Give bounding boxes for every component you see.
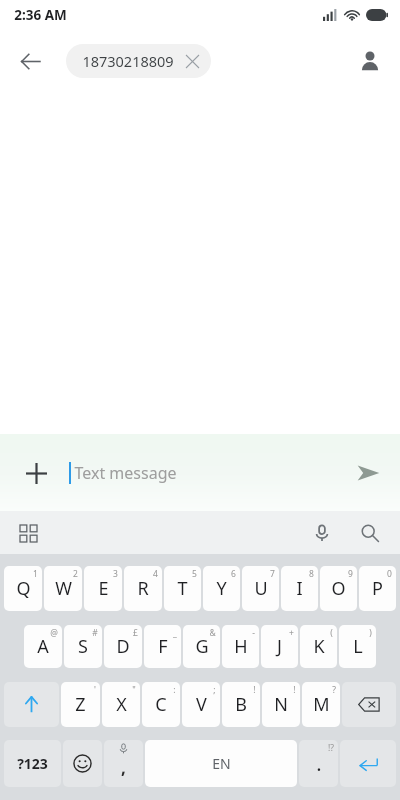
staticText: ! xyxy=(293,684,296,696)
staticText: I xyxy=(296,576,303,601)
staticText: V xyxy=(196,692,207,717)
button[interactable]: ?123 xyxy=(4,740,61,787)
staticText: X xyxy=(116,692,127,717)
button[interactable]: A xyxy=(24,625,62,668)
button[interactable]: Search xyxy=(350,513,390,553)
button[interactable]: R xyxy=(124,566,162,611)
button[interactable]: Apps xyxy=(8,513,48,553)
staticText: K xyxy=(313,634,325,659)
staticText: EN xyxy=(212,754,231,773)
staticText: 6 xyxy=(231,568,236,580)
button[interactable]: N xyxy=(262,682,300,727)
button[interactable]: I xyxy=(281,566,318,611)
staticText: O xyxy=(331,576,346,601)
staticText: !? xyxy=(328,742,334,754)
staticText: : xyxy=(173,684,176,696)
staticText: 4 xyxy=(153,568,158,580)
button[interactable]: K xyxy=(300,625,337,668)
staticText: R xyxy=(137,576,149,601)
button[interactable]: Contact xyxy=(348,39,392,83)
staticText: P xyxy=(372,576,383,601)
button[interactable]: Y xyxy=(203,566,240,611)
button[interactable]: C xyxy=(142,682,180,727)
staticText: 18730218809 xyxy=(82,51,174,71)
staticText: H xyxy=(234,634,248,659)
staticText: Z xyxy=(75,692,86,717)
staticText: @ xyxy=(50,627,58,639)
button[interactable]: F xyxy=(144,625,181,668)
button[interactable]: Send xyxy=(346,451,390,495)
staticText: 8 xyxy=(309,568,314,580)
staticText: # xyxy=(92,627,98,639)
staticText: W xyxy=(55,576,72,601)
button[interactable]: L xyxy=(339,625,376,668)
staticText: Y xyxy=(216,576,227,601)
staticText: ( xyxy=(330,627,333,639)
staticText: Q xyxy=(16,576,31,601)
staticText: D xyxy=(116,634,130,659)
staticText: " xyxy=(132,684,136,696)
staticText: C xyxy=(155,692,167,717)
button[interactable]: 18730218809 xyxy=(66,44,211,78)
staticText: £ xyxy=(133,627,138,639)
staticText: Text message xyxy=(74,462,177,484)
staticText: , xyxy=(121,756,126,779)
staticText: _ xyxy=(173,627,177,639)
button[interactable]: H xyxy=(222,625,259,668)
button[interactable]: W xyxy=(44,566,82,611)
staticText: 5 xyxy=(192,568,197,580)
staticText: 0 xyxy=(387,568,392,580)
staticText: - xyxy=(252,627,255,639)
button[interactable]: Z xyxy=(61,682,100,727)
staticText: J xyxy=(277,634,282,659)
staticText: S xyxy=(78,634,88,659)
button[interactable]: Comma xyxy=(104,740,143,787)
button[interactable]: P xyxy=(359,566,396,611)
staticText: 9 xyxy=(348,568,353,580)
button[interactable]: X xyxy=(102,682,140,727)
button[interactable]: E xyxy=(84,566,122,611)
staticText: ?123 xyxy=(17,754,48,773)
button[interactable]: Shift xyxy=(4,682,59,727)
button[interactable]: . xyxy=(299,740,338,787)
button[interactable]: EN xyxy=(145,740,297,787)
button[interactable]: T xyxy=(164,566,201,611)
staticText: L xyxy=(353,634,363,659)
staticText: . xyxy=(316,750,322,777)
staticText: ! xyxy=(253,684,256,696)
button[interactable]: Add attachment xyxy=(14,451,58,495)
staticText: ' xyxy=(94,684,96,696)
button[interactable]: Backspace xyxy=(342,682,396,727)
button[interactable]: Q xyxy=(4,566,42,611)
staticText: E xyxy=(98,576,109,601)
staticText: 3 xyxy=(113,568,118,580)
staticText: 1 xyxy=(33,568,38,580)
staticText: ? xyxy=(332,684,336,696)
button[interactable]: V xyxy=(182,682,220,727)
staticText: N xyxy=(274,692,288,717)
staticText: B xyxy=(235,692,247,717)
button[interactable]: J xyxy=(261,625,298,668)
staticText: U xyxy=(254,576,268,601)
button[interactable]: M xyxy=(302,682,340,727)
staticText: M xyxy=(313,692,330,717)
staticText: T xyxy=(177,576,188,601)
staticText: & xyxy=(209,627,216,639)
button[interactable]: B xyxy=(222,682,260,727)
button[interactable]: Back xyxy=(8,39,52,83)
button[interactable]: D xyxy=(104,625,142,668)
button[interactable]: U xyxy=(242,566,279,611)
staticText: + xyxy=(289,627,294,639)
button[interactable]: Enter xyxy=(340,740,396,787)
staticText: F xyxy=(158,634,168,659)
button[interactable]: Emoji xyxy=(63,740,102,787)
staticText: G xyxy=(195,634,209,659)
button[interactable]: Voice input xyxy=(302,513,342,553)
button[interactable]: O xyxy=(320,566,357,611)
staticText: 7 xyxy=(270,568,275,580)
staticText: 2 xyxy=(73,568,78,580)
staticText: 2:36 AM xyxy=(14,6,67,24)
button[interactable]: G xyxy=(183,625,220,668)
staticText: ; xyxy=(213,684,216,696)
button[interactable]: S xyxy=(64,625,102,668)
